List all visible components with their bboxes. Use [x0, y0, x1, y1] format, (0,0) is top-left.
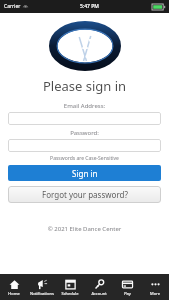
staticText: Sign in — [72, 168, 98, 179]
staticText: © 2021 Elite Dance Center — [0, 225, 169, 233]
button[interactable]: Notifications — [28, 277, 56, 298]
button[interactable] — [8, 112, 161, 125]
staticText: 5:47 PM — [80, 3, 99, 10]
button[interactable]: Account — [85, 277, 113, 298]
staticText: ELITE — [65, 34, 106, 53]
button[interactable]: Home — [0, 277, 28, 298]
staticText: Pay — [124, 291, 131, 296]
button[interactable]: More — [141, 277, 169, 298]
staticText: Account — [91, 291, 107, 296]
button[interactable] — [8, 139, 161, 152]
button[interactable]: Forgot your password? — [8, 186, 161, 203]
staticText: DANCE CENTER — [69, 54, 103, 59]
button[interactable]: Sign in — [8, 165, 161, 181]
staticText: Home — [8, 291, 20, 296]
staticText: Please sign in — [0, 77, 169, 95]
staticText: Carrier — [4, 3, 21, 10]
staticText: Notifications — [30, 291, 54, 296]
staticText: Email Address: — [0, 102, 169, 110]
staticText: Schedule — [61, 291, 79, 296]
staticText: Forgot your password? — [42, 189, 128, 200]
staticText: More — [150, 291, 160, 296]
button[interactable]: Pay — [113, 277, 141, 298]
staticText: Password: — [0, 129, 169, 137]
staticText: Passwords are Case-Sensitive — [0, 155, 169, 162]
button[interactable]: Schedule — [56, 277, 84, 298]
